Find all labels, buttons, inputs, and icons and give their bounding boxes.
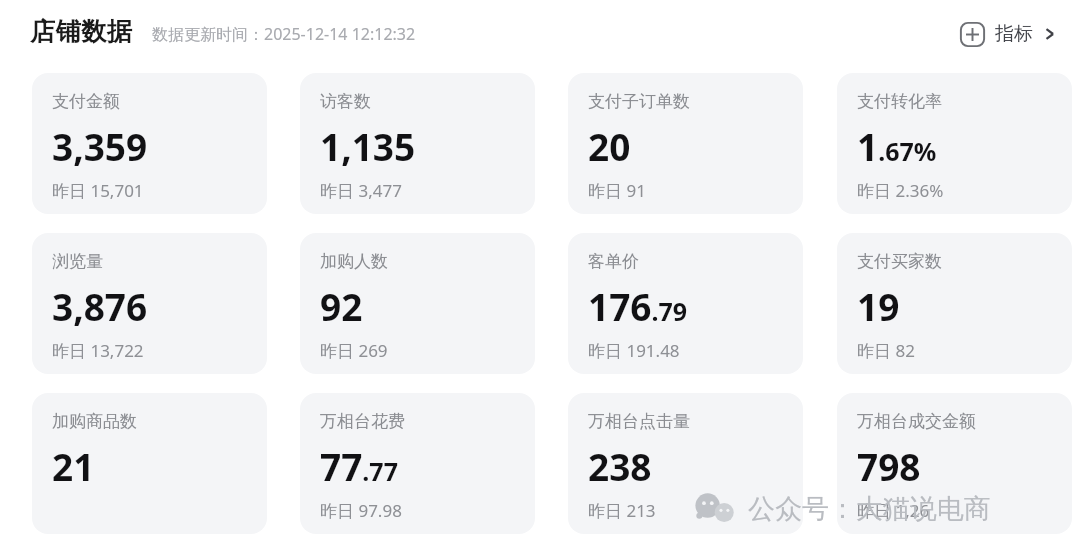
- staticText: 万相台点击量: [588, 411, 690, 432]
- staticText: 1,135: [320, 121, 416, 171]
- staticText: 21: [52, 441, 95, 491]
- staticText: 昨日 13,722: [52, 339, 144, 362]
- staticText: 昨日 213: [588, 499, 656, 522]
- staticText: 公众号：大猫说电商: [748, 492, 991, 526]
- staticText: 浏览量: [52, 251, 103, 272]
- button[interactable]: 万相台点击量: [568, 393, 803, 534]
- staticText: 3,359: [52, 121, 148, 171]
- button[interactable]: 访客数: [300, 73, 535, 214]
- button[interactable]: 客单价: [568, 233, 803, 374]
- staticText: 昨日 269: [320, 339, 388, 362]
- button[interactable]: Add metric: [955, 14, 1061, 54]
- staticText: 数据更新时间：2025-12-14 12:12:32: [152, 23, 416, 45]
- staticText: 昨日 82: [857, 339, 915, 362]
- staticText: 万相台成交金额: [857, 411, 976, 432]
- staticText: 客单价: [588, 251, 639, 272]
- staticText: 昨日 91: [588, 179, 646, 202]
- button[interactable]: 加购人数: [300, 233, 535, 374]
- staticText: 77.77: [320, 441, 398, 491]
- staticText: 支付子订单数: [588, 91, 690, 112]
- staticText: 238: [588, 441, 652, 491]
- button[interactable]: 支付转化率: [837, 73, 1072, 214]
- other: Add metric: [959, 21, 986, 48]
- staticText: 昨日 97.98: [320, 499, 402, 522]
- staticText: 昨日 191.48: [588, 339, 680, 362]
- staticText: 19: [857, 281, 900, 331]
- button[interactable]: 支付买家数: [837, 233, 1072, 374]
- staticText: 指标: [995, 22, 1033, 46]
- staticText: 加购商品数: [52, 411, 137, 432]
- staticText: 支付买家数: [857, 251, 942, 272]
- staticText: 20: [588, 121, 631, 171]
- button[interactable]: 万相台花费: [300, 393, 535, 534]
- button[interactable]: 浏览量: [32, 233, 267, 374]
- button[interactable]: 万相台成交金额: [837, 393, 1072, 534]
- staticText: 加购人数: [320, 251, 388, 272]
- staticText: 798: [857, 441, 921, 491]
- staticText: 92: [320, 281, 363, 331]
- staticText: 访客数: [320, 91, 371, 112]
- staticText: 支付转化率: [857, 91, 942, 112]
- staticText: 176.79: [588, 281, 688, 331]
- staticText: 昨日 3,477: [320, 179, 402, 202]
- staticText: 万相台花费: [320, 411, 405, 432]
- staticText: 支付金额: [52, 91, 120, 112]
- button[interactable]: 加购商品数: [32, 393, 267, 534]
- staticText: 3,876: [52, 281, 148, 331]
- button[interactable]: 支付子订单数: [568, 73, 803, 214]
- button[interactable]: 支付金额: [32, 73, 267, 214]
- staticText: 昨日 1,26: [857, 499, 930, 522]
- staticText: 1.67%: [857, 121, 937, 171]
- staticText: 昨日 2.36%: [857, 179, 944, 202]
- staticText: 店铺数据: [30, 16, 132, 47]
- staticText: 昨日 15,701: [52, 179, 144, 202]
